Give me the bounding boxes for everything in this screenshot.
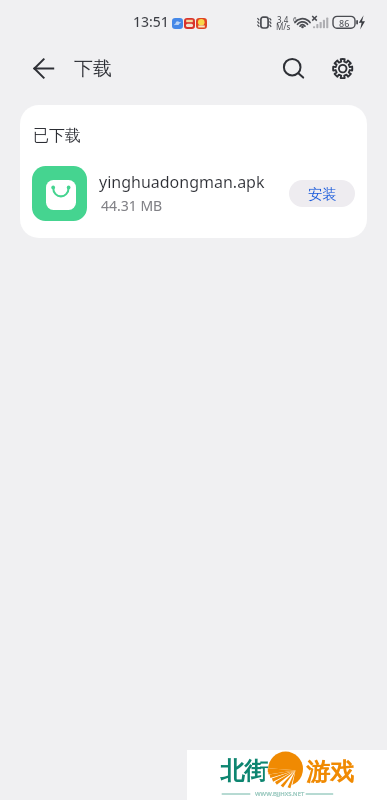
button[interactable]: 安装 (289, 180, 355, 207)
button[interactable]: Settings (320, 46, 364, 90)
staticText: WWW.BJJHXS.NET (255, 790, 305, 798)
staticText: M/s (276, 21, 291, 32)
button[interactable]: Back (22, 46, 66, 90)
staticText: 已下载 (33, 126, 81, 146)
staticText: 86 (339, 17, 350, 29)
staticText: 安装 (308, 185, 337, 203)
staticText: 44.31 MB (101, 196, 163, 215)
staticText: 游戏 (306, 757, 354, 787)
staticText: 3.4 (277, 14, 289, 25)
button[interactable]: Search (270, 46, 314, 90)
staticText: 下载 (74, 57, 112, 81)
staticText: 6 (293, 15, 297, 24)
staticText: 13:51 (133, 12, 169, 31)
button[interactable]: yinghuadongman.apk (20, 158, 367, 228)
staticText: 北街 (220, 756, 268, 786)
staticText: yinghuadongman.apk (99, 171, 265, 193)
